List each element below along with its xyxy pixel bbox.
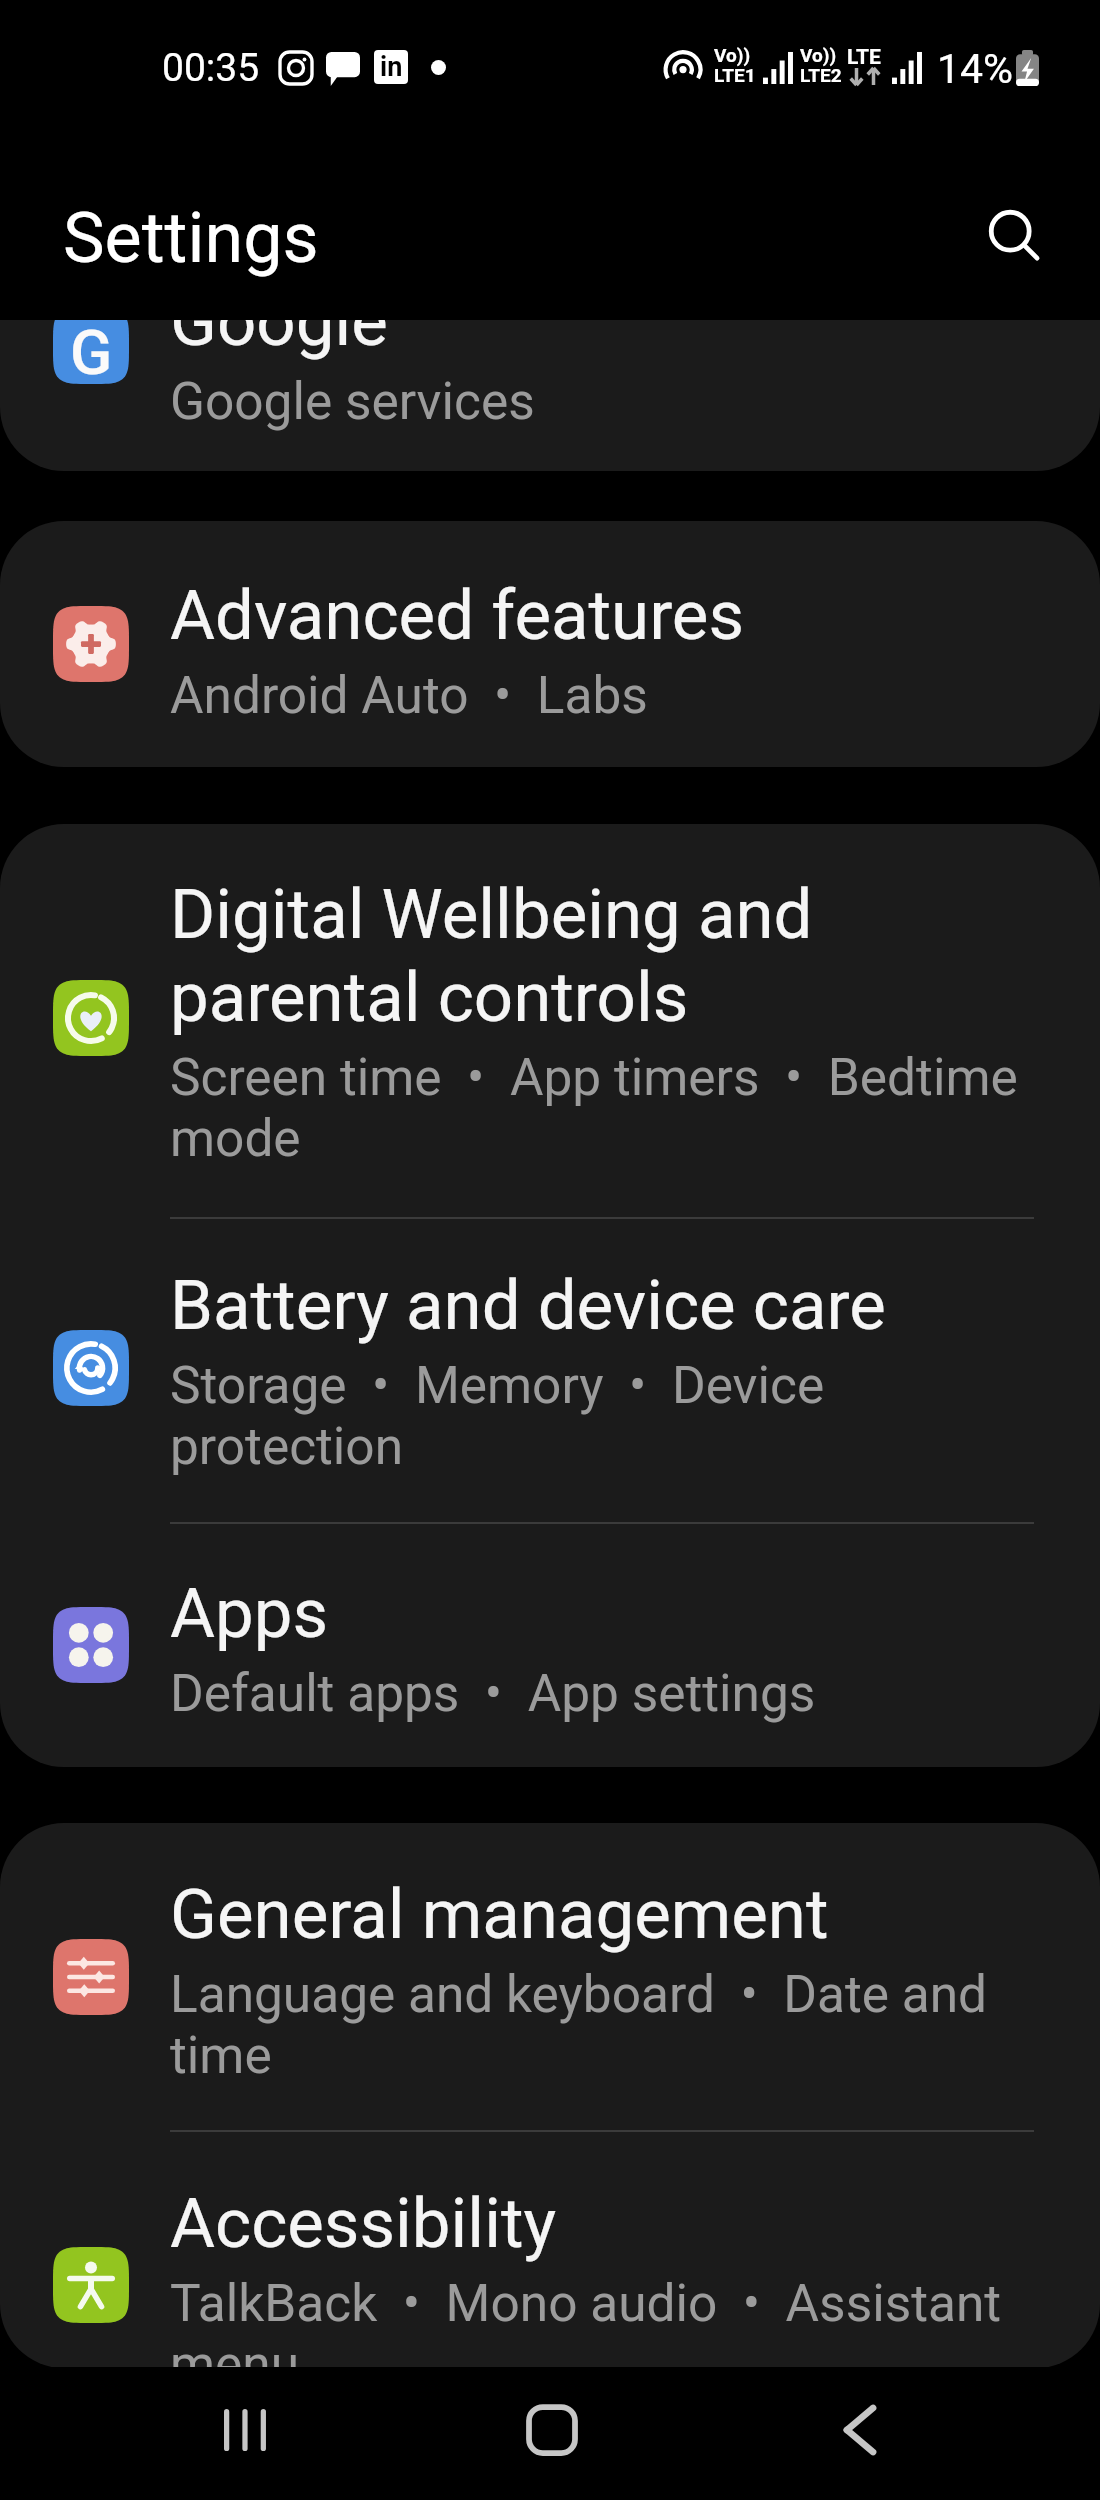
staticText: Storage • Memory • Device protection	[170, 1355, 1050, 1477]
button[interactable]: Digital Wellbeing and parental controls	[0, 824, 1100, 1217]
button[interactable]: General management	[0, 1823, 1100, 2130]
staticText: Google	[170, 320, 1050, 362]
staticText: Android Auto • Labs	[170, 665, 1050, 726]
button[interactable]: Search	[955, 176, 1075, 296]
button[interactable]: Recent apps	[185, 2370, 305, 2490]
staticText: Vo))	[800, 44, 837, 66]
button[interactable]: Back	[800, 2370, 920, 2490]
staticText: in	[380, 51, 403, 83]
staticText: Battery and device care	[170, 1263, 1050, 1346]
staticText: Settings	[63, 197, 319, 279]
staticText: Accessibility	[170, 2181, 1050, 2264]
staticText: Language and keyboard • Date and time	[170, 1964, 1050, 2086]
button[interactable]: Home	[492, 2370, 612, 2490]
button[interactable]: Accessibility	[0, 2131, 1100, 2368]
staticText: LTE1	[714, 64, 756, 86]
staticText: Advanced features	[170, 573, 1050, 656]
staticText: Default apps • App settings	[170, 1663, 1050, 1724]
staticText: 00:35	[162, 45, 260, 91]
staticText: Digital Wellbeing and parental controls	[170, 872, 1050, 1038]
staticText: Vo))	[714, 44, 751, 66]
staticText: G	[70, 320, 113, 376]
button[interactable]: Battery and device care	[0, 1218, 1100, 1522]
staticText: LTE2	[800, 64, 842, 86]
button[interactable]: Apps	[0, 1523, 1100, 1767]
staticText: Google services	[170, 371, 1050, 432]
staticText: 14%	[937, 45, 1014, 93]
button[interactable]: Advanced features	[0, 521, 1100, 767]
staticText: General management	[170, 1872, 1050, 1955]
staticText: Apps	[170, 1571, 1050, 1654]
button[interactable]: G	[0, 320, 1100, 471]
staticText: LTE	[847, 45, 881, 70]
staticText: TalkBack • Mono audio • Assistant menu	[170, 2273, 1050, 2368]
staticText: Screen time • App timers • Bedtime mode	[170, 1047, 1050, 1169]
